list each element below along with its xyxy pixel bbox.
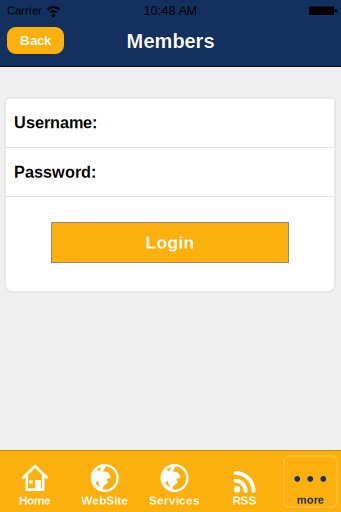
button[interactable]: Home xyxy=(0,451,70,512)
staticText: Username: xyxy=(14,113,97,132)
button[interactable]: Password: xyxy=(5,148,335,196)
staticText: Carrier xyxy=(7,4,42,17)
button[interactable]: WebSite xyxy=(70,451,139,512)
staticText: RSS xyxy=(232,494,256,507)
button[interactable]: More xyxy=(279,451,341,512)
button[interactable]: RSS xyxy=(209,451,279,512)
staticText: Login xyxy=(145,233,194,252)
staticText: Password: xyxy=(14,163,96,181)
staticText: Members xyxy=(126,30,214,52)
button[interactable]: Services xyxy=(139,451,209,512)
staticText: more xyxy=(297,494,324,506)
button[interactable]: Login xyxy=(51,222,289,263)
staticText: Back xyxy=(20,33,51,48)
staticText: Services xyxy=(149,494,200,507)
staticText: 10:48 AM xyxy=(143,3,197,18)
staticText: WebSite xyxy=(81,494,128,507)
button[interactable]: Username: xyxy=(5,98,335,147)
staticText: Home xyxy=(19,494,51,507)
button[interactable]: Back xyxy=(7,27,64,54)
